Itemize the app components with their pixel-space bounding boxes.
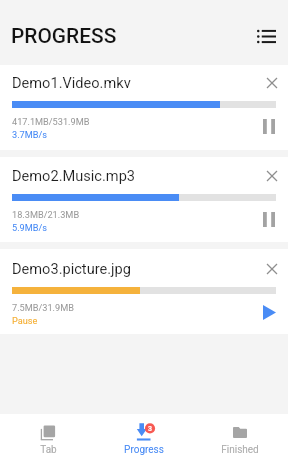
staticText: 3 — [148, 425, 152, 433]
button[interactable]: Cancel download — [262, 73, 282, 93]
button[interactable]: Cancel download — [262, 166, 282, 186]
button[interactable]: Resume download — [257, 300, 281, 324]
staticText: 18.3MB/21.3MB — [12, 209, 80, 220]
staticText: 3.7MB/s — [12, 129, 48, 140]
button[interactable]: Demo1.Video.mkv — [0, 65, 288, 150]
button[interactable]: Pause download — [257, 207, 281, 231]
staticText: Demo3.picture.jpg — [12, 260, 131, 277]
button[interactable]: Cancel download — [262, 259, 282, 279]
staticText: PROGRESS — [11, 24, 117, 48]
staticText: 5.9MB/s — [12, 222, 48, 233]
staticText: Demo2.Music.mp3 — [12, 167, 136, 184]
staticText: Pause — [12, 315, 38, 326]
button[interactable]: Finished — [192, 414, 288, 461]
button[interactable]: 3 — [96, 414, 192, 461]
staticText: Progress — [124, 444, 164, 456]
button[interactable]: Demo3.picture.jpg — [0, 249, 288, 334]
button[interactable]: List view — [254, 24, 278, 48]
staticText: 7.5MB/31.9MB — [12, 302, 74, 313]
staticText: 417.1MB/531.9MB — [12, 116, 90, 127]
staticText: Finished — [221, 444, 259, 456]
staticText: Tab — [40, 444, 57, 456]
button[interactable]: Demo2.Music.mp3 — [0, 157, 288, 242]
button[interactable]: Pause download — [257, 114, 281, 138]
button[interactable]: Tab — [0, 414, 96, 461]
staticText: Demo1.Video.mkv — [12, 74, 131, 91]
